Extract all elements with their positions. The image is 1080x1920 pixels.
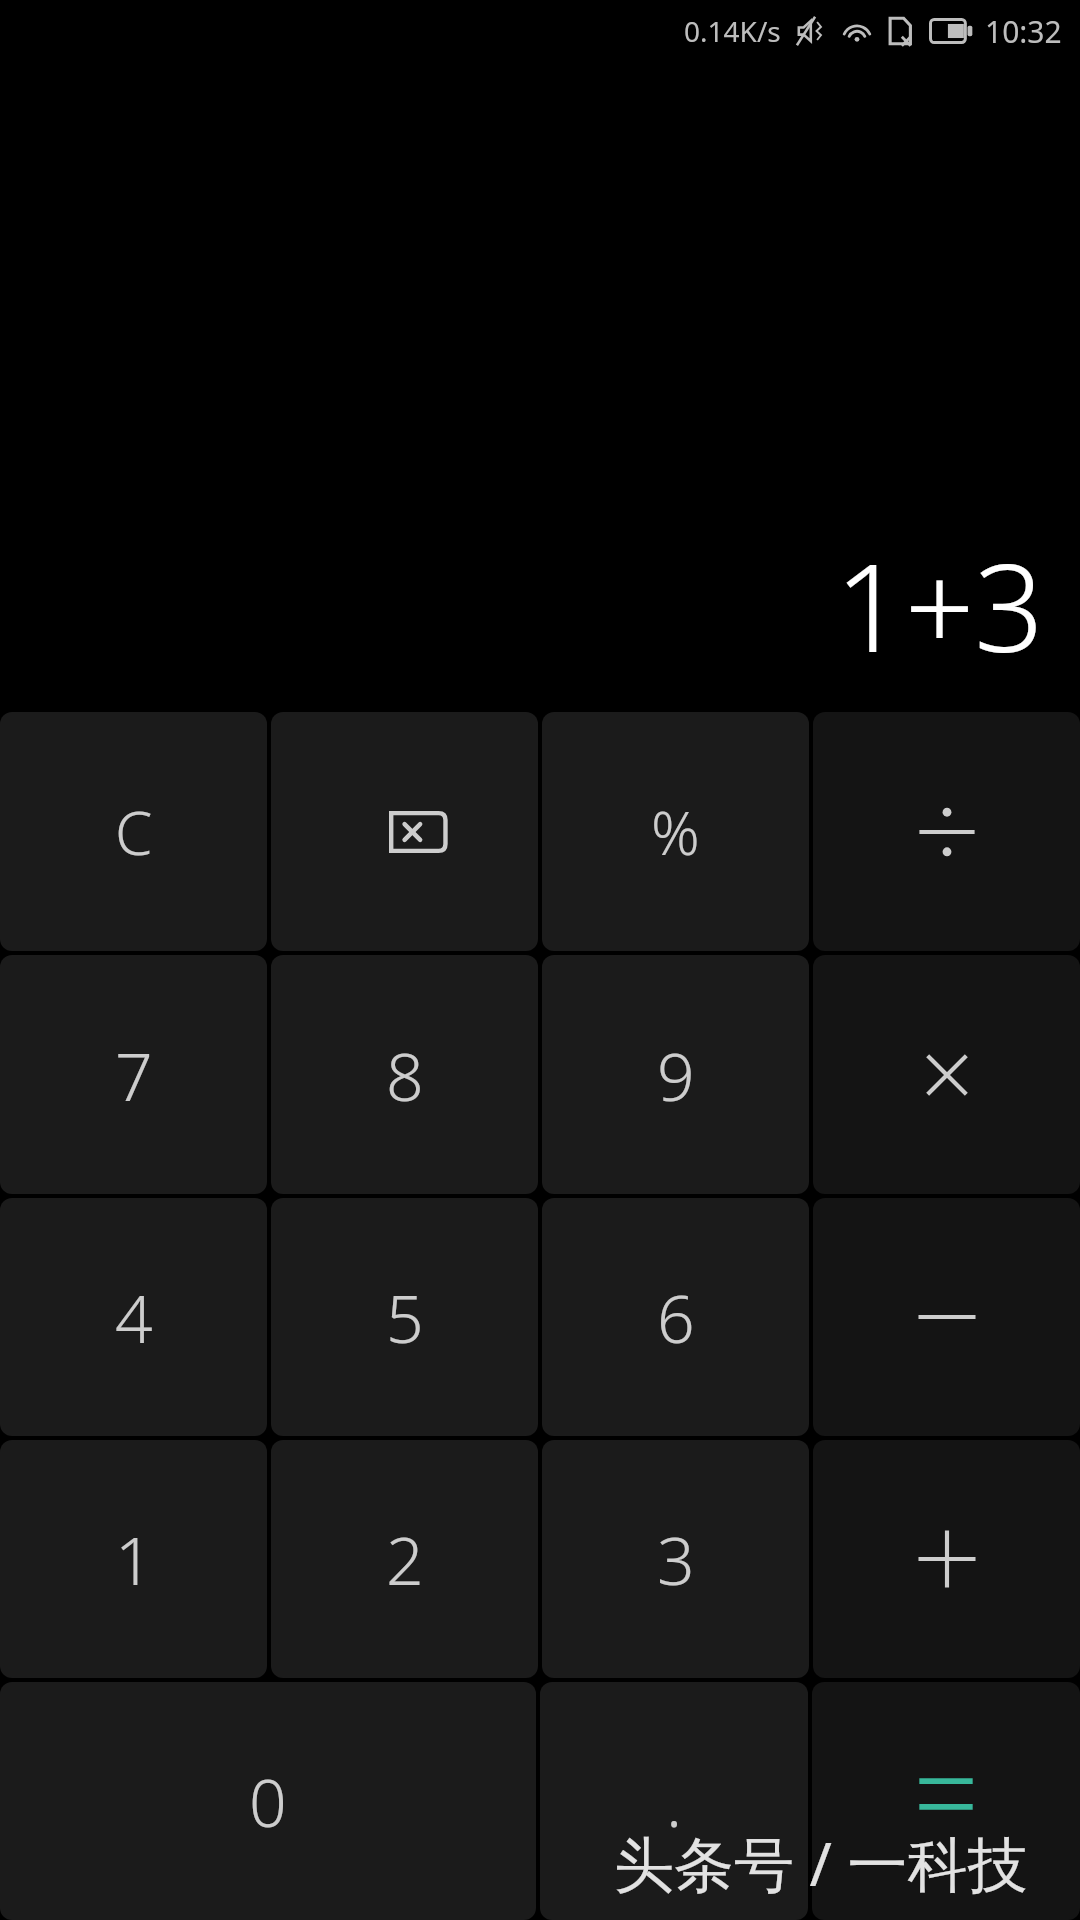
- button[interactable]: 4: [0, 1198, 267, 1436]
- button[interactable]: Backspace: [271, 712, 538, 951]
- staticText: 头条号 / 一科技: [614, 1822, 1028, 1904]
- button[interactable]: C: [0, 712, 267, 951]
- staticText: 0.14K/s: [684, 12, 781, 50]
- staticText: 0: [249, 1756, 287, 1846]
- button[interactable]: 1: [0, 1440, 267, 1678]
- button[interactable]: Minus: [813, 1198, 1080, 1436]
- staticText: 10:32: [985, 11, 1062, 52]
- button[interactable]: Equals: [812, 1682, 1080, 1920]
- staticText: 3: [657, 1514, 695, 1604]
- button[interactable]: Plus: [813, 1440, 1080, 1678]
- button[interactable]: .: [540, 1682, 808, 1920]
- button[interactable]: %: [542, 712, 809, 951]
- button[interactable]: 3: [542, 1440, 809, 1678]
- staticText: 4: [115, 1272, 153, 1362]
- button[interactable]: 8: [271, 955, 538, 1194]
- button[interactable]: 2: [271, 1440, 538, 1678]
- staticText: 5: [386, 1272, 424, 1362]
- button[interactable]: 9: [542, 955, 809, 1194]
- staticText: .: [666, 1756, 683, 1846]
- button[interactable]: 5: [271, 1198, 538, 1436]
- button[interactable]: 6: [542, 1198, 809, 1436]
- button[interactable]: 7: [0, 955, 267, 1194]
- staticText: 9: [657, 1030, 695, 1120]
- staticText: %: [651, 791, 700, 873]
- staticText: C: [115, 791, 153, 873]
- staticText: 2: [386, 1514, 424, 1604]
- button[interactable]: Divide: [813, 712, 1080, 951]
- button[interactable]: Multiply: [813, 955, 1080, 1194]
- staticText: 7: [115, 1030, 153, 1120]
- staticText: 1+3: [835, 522, 1044, 688]
- button[interactable]: 0: [0, 1682, 536, 1920]
- staticText: 1: [115, 1514, 153, 1604]
- staticText: 8: [386, 1030, 424, 1120]
- staticText: 6: [657, 1272, 695, 1362]
